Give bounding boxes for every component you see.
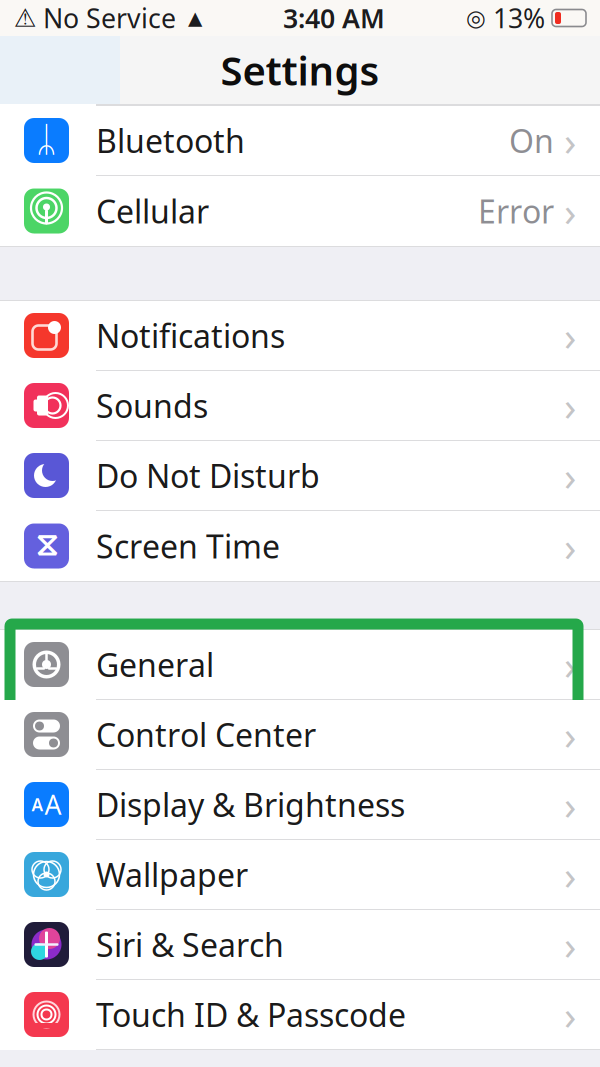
staticText: 13% — [493, 0, 545, 36]
staticText: Sounds — [96, 384, 208, 427]
staticText: Cellular — [96, 190, 209, 232]
staticText: ᛦ — [36, 124, 57, 157]
button[interactable]: Touch ID & Passcode — [0, 980, 600, 1050]
button[interactable]: Notifications — [0, 301, 600, 371]
staticText: › — [564, 449, 576, 502]
staticText: › — [564, 848, 576, 901]
button[interactable]: Sounds — [0, 371, 600, 441]
staticText: Wallpaper — [96, 853, 248, 896]
staticText: › — [564, 918, 576, 971]
staticText: 3:40 AM — [283, 0, 385, 36]
button[interactable]: General — [0, 630, 600, 700]
staticText: › — [564, 379, 576, 432]
staticText: ⧖ — [35, 530, 57, 562]
staticText: Error — [478, 190, 554, 232]
staticText: Touch ID & Passcode — [96, 993, 406, 1036]
staticText: ▲ — [188, 7, 202, 29]
staticText: ⚠ — [14, 4, 37, 32]
staticText: On — [509, 119, 554, 162]
staticText: General — [96, 643, 214, 686]
staticText: › — [564, 114, 576, 167]
staticText: › — [564, 988, 576, 1041]
staticText: › — [564, 778, 576, 831]
staticText: Notifications — [96, 314, 285, 357]
staticText: A — [44, 787, 61, 822]
staticText: A — [31, 793, 43, 816]
staticText: Display & Brightness — [96, 783, 405, 826]
staticText: Control Center — [96, 713, 316, 756]
button[interactable]: Siri & Search — [0, 910, 600, 980]
button[interactable]: Cellular — [0, 176, 600, 246]
staticText: Settings — [220, 43, 379, 96]
staticText: ◎ — [466, 5, 486, 31]
staticText: › — [564, 309, 576, 362]
staticText: › — [564, 708, 576, 761]
staticText: › — [564, 638, 576, 691]
staticText: Bluetooth — [96, 119, 245, 162]
staticText: › — [564, 519, 576, 572]
button[interactable]: ⧖ — [0, 511, 600, 581]
staticText: Screen Time — [96, 525, 280, 567]
staticText: No Service — [43, 0, 176, 36]
button[interactable]: Do Not Disturb — [0, 441, 600, 511]
button[interactable]: A — [0, 770, 600, 840]
button[interactable]: Wallpaper — [0, 840, 600, 910]
staticText: › — [564, 184, 576, 237]
staticText: Siri & Search — [96, 923, 284, 966]
staticText: Do Not Disturb — [96, 454, 320, 497]
button[interactable]: ᛦ — [0, 106, 600, 176]
button[interactable]: Control Center — [0, 700, 600, 770]
